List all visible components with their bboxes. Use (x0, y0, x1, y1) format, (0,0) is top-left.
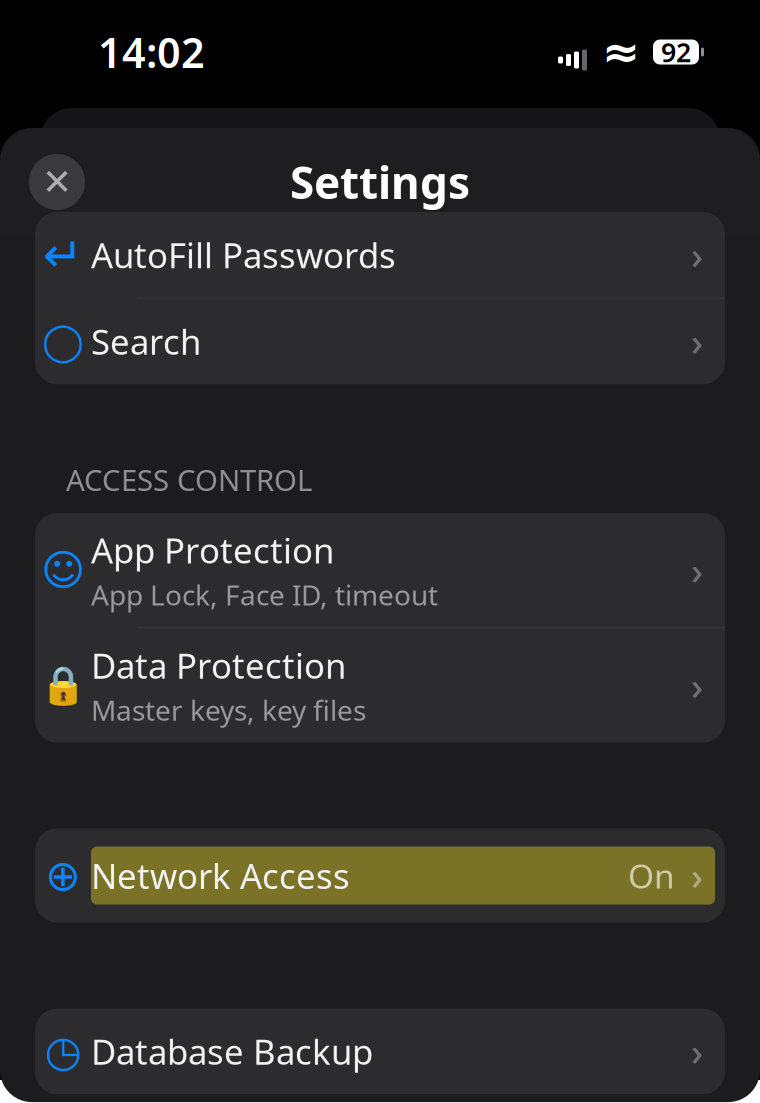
button[interactable]: Close (20, 145, 94, 219)
staticText: AutoFill Passwords (91, 232, 396, 278)
staticText: 92 (661, 34, 691, 70)
button[interactable]: ◷ (35, 1008, 725, 1094)
staticText: › (691, 317, 703, 366)
staticText: ☺ (41, 546, 85, 594)
button[interactable]: ☺ (35, 513, 725, 627)
staticText: ACCESS CONTROL (66, 460, 312, 499)
staticText: Search (91, 318, 201, 364)
staticText: Data Protection (91, 642, 346, 688)
staticText: App Lock, Face ID, timeout (91, 576, 438, 613)
staticText: Settings (290, 153, 470, 211)
staticText: Master keys, key files (91, 691, 366, 729)
staticText: Database Backup (91, 1028, 373, 1074)
staticText: › (691, 1026, 703, 1076)
staticText: On (628, 853, 675, 898)
staticText: ◷ (44, 1027, 81, 1075)
staticText: Network Access (91, 852, 350, 898)
staticText: 14:02 (98, 25, 205, 79)
staticText: ↵ (43, 227, 83, 282)
staticText: › (691, 851, 703, 900)
staticText: › (691, 230, 703, 280)
staticText: App Protection (91, 527, 334, 573)
staticText: ✕ (42, 162, 72, 202)
staticText: ⊕ (45, 851, 81, 900)
staticText: ◯ (42, 320, 84, 363)
button[interactable]: ⊕ (35, 828, 725, 922)
button[interactable]: ↵ (35, 212, 725, 298)
staticText: ≈ (602, 26, 640, 78)
button[interactable]: 🔒 (35, 628, 725, 742)
staticText: › (691, 545, 703, 595)
staticText: 🔒 (40, 664, 86, 707)
button[interactable]: ◯ (35, 299, 725, 384)
staticText: › (691, 661, 703, 710)
